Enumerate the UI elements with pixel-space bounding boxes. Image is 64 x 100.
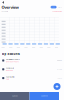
button[interactable]: Fabrikam Inc (0, 74, 64, 82)
button[interactable]: Export (51, 6, 57, 8)
staticText: 14.65% (57, 77, 62, 79)
staticText: Confirm (41, 95, 47, 97)
button[interactable]: Confirm (29, 92, 59, 100)
button[interactable]: Cancel (0, 92, 29, 100)
staticText: Overdue · 14 days (6, 61, 19, 63)
button[interactable]: Contoso Ltd (0, 65, 64, 74)
staticText: Fabrikam Inc (6, 76, 15, 78)
button[interactable]: Northwind Traders (0, 56, 64, 65)
staticText: More (58, 6, 62, 8)
staticText: Due soon (6, 70, 13, 71)
staticText: Contoso Ltd (6, 67, 14, 69)
staticText: 42.08% (57, 60, 62, 61)
button[interactable]: More (58, 6, 63, 8)
staticText: Top accounts (2, 52, 20, 56)
staticText: Northwind Traders (6, 58, 20, 60)
staticText: Export (51, 6, 56, 8)
staticText: Paid (6, 78, 9, 80)
button[interactable]: Add (53, 83, 60, 90)
staticText: 31.19% (57, 68, 62, 70)
staticText: Overview (1, 4, 18, 10)
staticText: Accounts (1, 11, 8, 12)
staticText: Cancel (12, 95, 17, 97)
staticText: +12.4% vs prior (52, 11, 63, 12)
button[interactable]: Back (1, 0, 6, 5)
